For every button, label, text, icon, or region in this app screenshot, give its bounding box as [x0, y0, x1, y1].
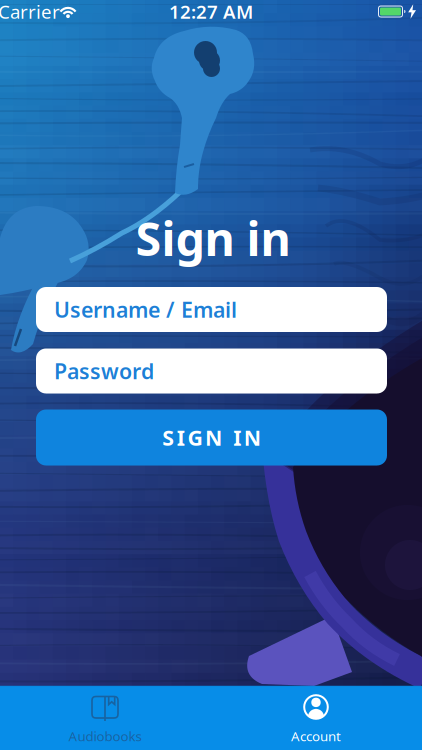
staticText: Username / Email: [54, 295, 237, 324]
staticText: Password: [54, 357, 154, 385]
staticText: SIGN IN: [162, 423, 261, 452]
staticText: Carrier: [0, 0, 60, 24]
staticText: Account: [291, 727, 341, 745]
staticText: 12:27 AM: [169, 0, 253, 24]
staticText: Audiobooks: [68, 727, 141, 745]
staticText: Sign in: [135, 207, 290, 269]
